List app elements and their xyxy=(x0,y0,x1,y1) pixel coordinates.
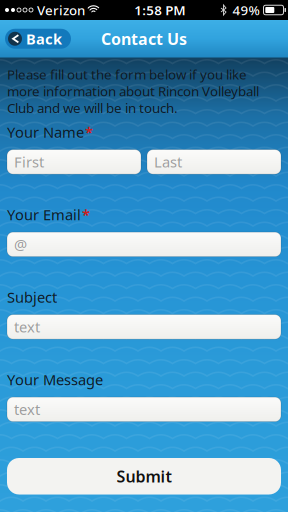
button[interactable]: Submit xyxy=(7,458,281,494)
staticText: Your Message xyxy=(7,370,103,389)
staticText: @ xyxy=(14,235,27,254)
button[interactable]: First xyxy=(7,150,141,174)
staticText: Contact Us xyxy=(101,28,187,49)
button[interactable]: text xyxy=(7,315,281,339)
staticText: Last xyxy=(154,152,182,172)
staticText: 49% xyxy=(232,1,259,19)
staticText: * xyxy=(85,122,93,142)
button[interactable]: Back xyxy=(5,29,71,49)
staticText: Your Name xyxy=(7,122,84,142)
staticText: Back xyxy=(26,29,62,48)
button[interactable]: @ xyxy=(7,232,281,257)
staticText: text xyxy=(14,317,40,337)
staticText: Verizon xyxy=(37,1,85,19)
staticText: Your Email xyxy=(7,205,81,224)
staticText: * xyxy=(82,205,90,224)
staticText: Submit xyxy=(116,466,171,487)
staticText: Subject xyxy=(7,287,57,307)
staticText: First xyxy=(14,152,44,172)
button[interactable]: text xyxy=(7,397,281,422)
button[interactable]: Last xyxy=(147,150,281,174)
staticText: Please fill out the form below if you li… xyxy=(7,65,259,117)
staticText: 1:58 PM xyxy=(134,1,185,19)
staticText: text xyxy=(14,400,40,419)
